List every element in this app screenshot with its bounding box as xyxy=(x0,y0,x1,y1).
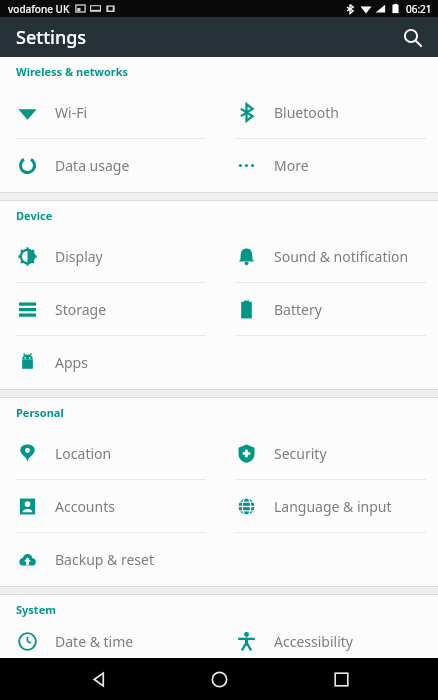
button[interactable]: Apps xyxy=(0,336,218,388)
staticText: Battery xyxy=(274,300,322,319)
staticText: Security xyxy=(274,444,327,463)
staticText: Accounts xyxy=(55,497,115,516)
staticText: 06:21 xyxy=(406,2,432,16)
button[interactable]: Home xyxy=(195,658,243,700)
staticText: Sound & notification xyxy=(274,247,409,266)
staticText: Personal xyxy=(16,405,64,420)
staticText: Backup & reset xyxy=(55,550,154,569)
button[interactable]: Security xyxy=(219,427,438,479)
staticText: vodafone UK xyxy=(8,2,70,16)
button[interactable]: Sound & notification xyxy=(219,230,438,282)
button[interactable]: Recents xyxy=(317,658,365,700)
staticText: Device xyxy=(16,208,53,223)
staticText: Display xyxy=(55,247,103,266)
button[interactable]: Location xyxy=(0,427,218,479)
button[interactable]: Date & time xyxy=(0,624,218,658)
button[interactable]: Data usage xyxy=(0,139,218,191)
button[interactable]: More xyxy=(219,139,438,191)
staticText: Settings xyxy=(16,25,87,50)
staticText: Location xyxy=(55,444,112,463)
button[interactable]: Accounts xyxy=(0,480,218,532)
staticText: Accessibility xyxy=(274,632,353,651)
staticText: Data usage xyxy=(55,156,130,175)
staticText: Language & input xyxy=(274,497,392,516)
staticText: System xyxy=(16,602,56,617)
staticText: Apps xyxy=(55,353,88,372)
staticText: Wireless & networks xyxy=(16,64,129,79)
staticText: Bluetooth xyxy=(274,103,339,122)
button[interactable]: Language & input xyxy=(219,480,438,532)
button[interactable]: Backup & reset xyxy=(0,533,218,585)
button[interactable]: Back xyxy=(74,658,122,700)
button[interactable]: Search xyxy=(394,19,430,55)
button[interactable]: Bluetooth xyxy=(219,86,438,138)
button[interactable]: Display xyxy=(0,230,218,282)
button[interactable]: Battery xyxy=(219,283,438,335)
button[interactable]: Accessibility xyxy=(219,624,438,658)
staticText: Storage xyxy=(55,300,107,319)
staticText: Date & time xyxy=(55,632,134,651)
button[interactable]: Wi-Fi xyxy=(0,86,218,138)
staticText: More xyxy=(274,156,309,175)
staticText: Wi-Fi xyxy=(55,103,88,122)
button[interactable]: Storage xyxy=(0,283,218,335)
